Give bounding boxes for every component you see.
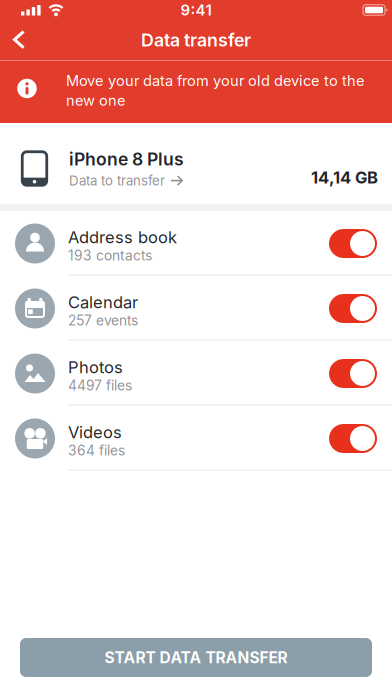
staticText: Videos [68,422,122,442]
button[interactable]: START DATA TRANSFER [20,638,372,677]
staticText: Calendar [68,292,138,312]
button[interactable]: Calendar toggle [329,294,377,323]
button[interactable]: Photos toggle [329,359,377,388]
staticText: 4497 files [68,377,132,394]
staticText: 193 contacts [68,247,152,264]
staticText: new one [66,91,126,109]
staticText: 364 files [68,442,125,459]
staticText: Address book [68,227,177,247]
button[interactable]: Address book toggle [329,229,377,258]
staticText: Data to transfer [69,173,165,189]
staticText: START DATA TRANSFER [104,648,287,667]
staticText: 14,14 GB [311,167,378,188]
button[interactable]: Videos toggle [329,424,377,453]
staticText: 9:41 [180,1,211,19]
staticText: Photos [68,357,123,377]
staticText: Move your data from your old device to t… [66,72,365,89]
staticText: Data transfer [141,29,251,51]
staticText: 257 events [68,312,138,329]
button[interactable]: Back [0,20,39,60]
staticText: iPhone 8 Plus [69,148,184,170]
